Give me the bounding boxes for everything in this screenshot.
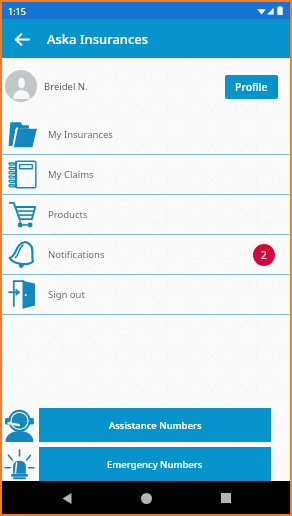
button[interactable]: Products <box>2 195 290 235</box>
button[interactable]: Recents <box>211 483 241 513</box>
staticText: My Insurances <box>48 128 113 141</box>
staticText: Products <box>48 208 88 221</box>
staticText: Profile <box>235 80 268 94</box>
staticText: Aska Insurances <box>47 30 149 48</box>
staticText: Notifications <box>48 248 105 261</box>
button[interactable]: Notifications <box>2 235 290 275</box>
button[interactable]: Profile <box>225 75 278 99</box>
button[interactable]: Assistance Numbers <box>2 408 290 442</box>
staticText: Assistance Numbers <box>109 419 202 432</box>
staticText: Breidel N. <box>44 80 88 93</box>
staticText: Sign out <box>48 288 85 301</box>
staticText: Emergency Numbers <box>107 458 203 471</box>
staticText: 1:15 <box>8 5 26 17</box>
button[interactable]: My Insurances <box>2 115 290 155</box>
button[interactable]: Sign out <box>2 275 290 315</box>
staticText: My Claims <box>48 168 94 181</box>
button[interactable]: My Claims <box>2 155 290 195</box>
button[interactable]: Back <box>8 25 36 53</box>
staticText: 2 <box>261 248 267 262</box>
button[interactable]: Back <box>52 483 82 513</box>
button[interactable]: Home <box>131 483 161 513</box>
button[interactable]: Emergency Numbers <box>2 447 290 481</box>
